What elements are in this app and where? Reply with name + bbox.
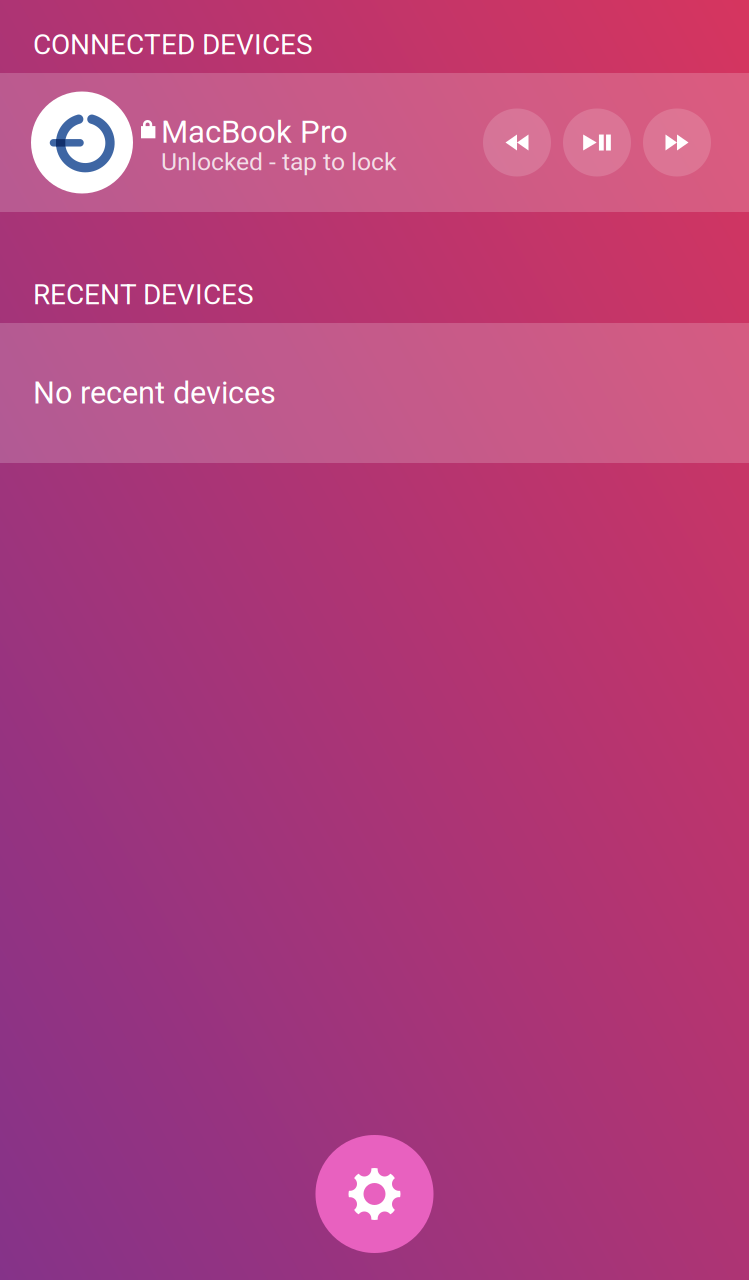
staticText: CONNECTED DEVICES (33, 28, 313, 61)
button[interactable]: Play or pause (563, 108, 631, 176)
button[interactable]: Fast forward (643, 108, 711, 176)
staticText: MacBook Pro (161, 114, 348, 150)
staticText: Unlocked - tap to lock (161, 147, 397, 176)
staticText: RECENT DEVICES (33, 278, 254, 311)
button[interactable]: Settings (315, 1135, 433, 1253)
staticText: No recent devices (33, 375, 276, 411)
button[interactable]: Rewind (483, 108, 551, 176)
button[interactable]: MacBook Pro (0, 73, 749, 212)
